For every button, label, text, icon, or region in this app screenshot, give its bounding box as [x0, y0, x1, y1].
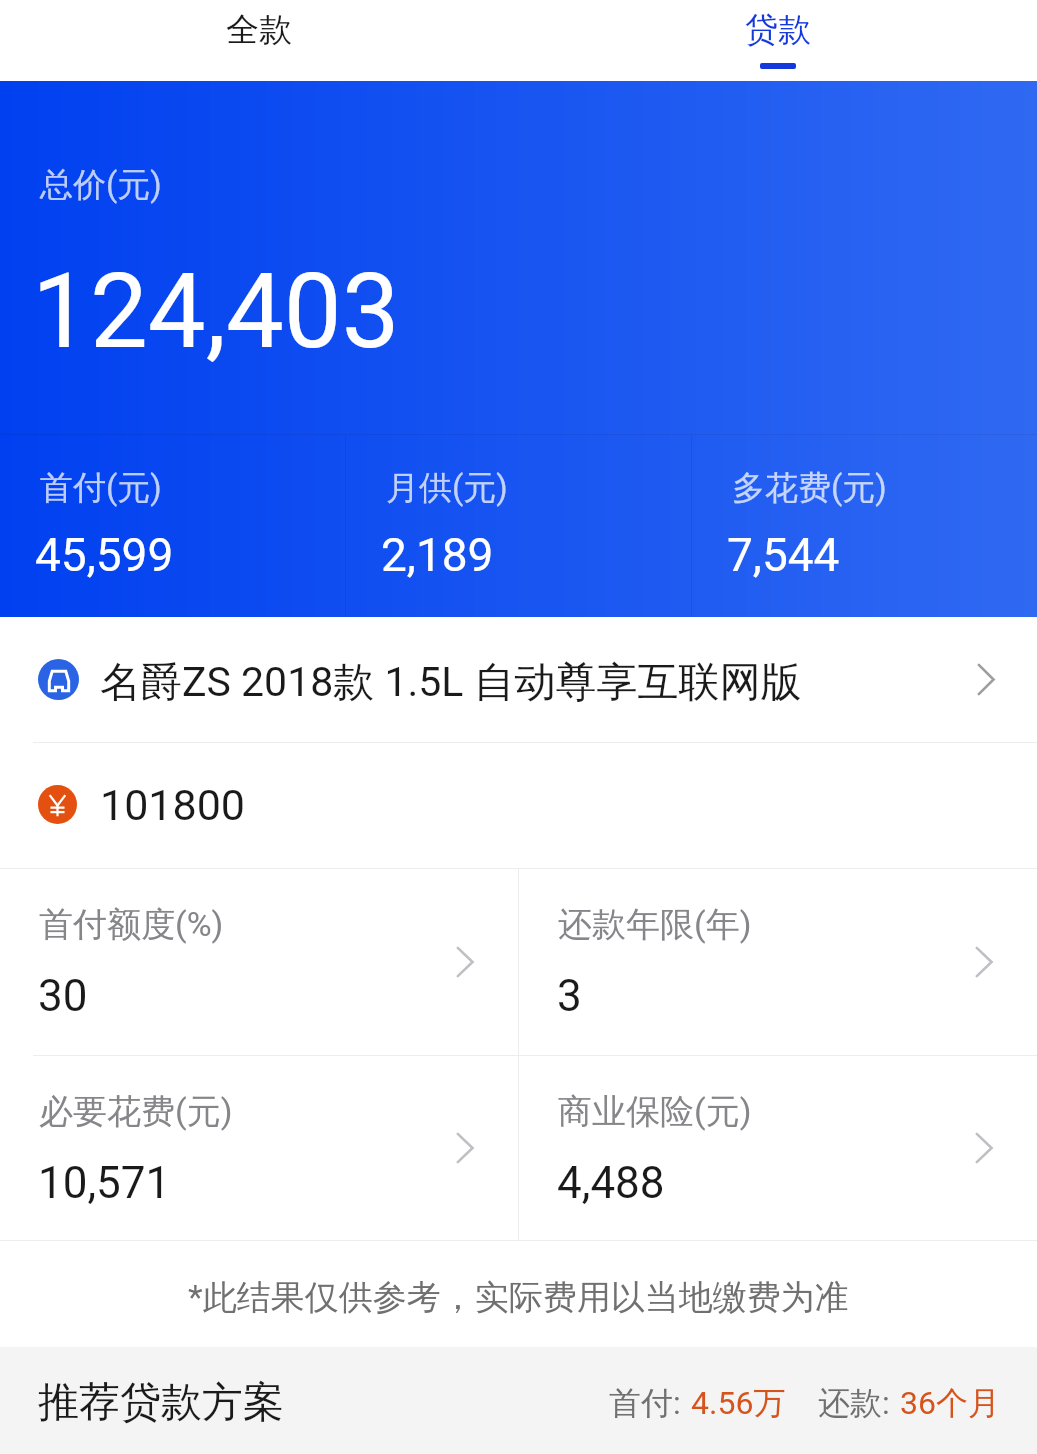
staticText: 3 — [557, 970, 582, 1022]
button[interactable]: 贷款 — [518, 0, 1037, 81]
other: More — [456, 947, 474, 977]
staticText: 101800 — [100, 780, 245, 830]
staticText: *此结果仅供参考，实际费用以当地缴费为准 — [188, 1276, 849, 1319]
staticText: 4.56万 — [691, 1383, 786, 1423]
other: Car model — [38, 659, 79, 700]
other: More — [456, 1133, 474, 1163]
staticText: 首付(元) — [40, 467, 162, 509]
other: More — [975, 1133, 993, 1163]
staticText: 首付额度(%) — [39, 903, 224, 946]
staticText: 30 — [38, 970, 88, 1022]
staticText: 10,571 — [38, 1157, 171, 1209]
staticText: 2,189 — [381, 528, 494, 582]
other: More — [975, 947, 993, 977]
button[interactable]: 月供(元) — [346, 435, 691, 617]
button[interactable]: 必要花费(元) — [0, 1056, 518, 1240]
button[interactable]: 多花费(元) — [692, 435, 1037, 617]
staticText: 45,599 — [35, 528, 174, 582]
staticText: 总价(元) — [40, 164, 162, 206]
staticText: 商业保险(元) — [558, 1090, 752, 1133]
button[interactable]: 首付额度(%) — [0, 869, 518, 1055]
staticText: 还款年限(年) — [558, 903, 752, 946]
button[interactable]: Car model — [0, 617, 1037, 742]
button[interactable]: 还款年限(年) — [519, 869, 1037, 1055]
staticText: 名爵ZS 2018款 1.5L 自动尊享互联网版 — [100, 657, 802, 709]
staticText: 推荐贷款方案 — [38, 1377, 284, 1429]
button[interactable]: 首付(元) — [0, 435, 345, 617]
staticText: 4,488 — [557, 1157, 665, 1209]
staticText: 月供(元) — [386, 467, 508, 509]
staticText: 还款: — [818, 1383, 890, 1423]
staticText: 多花费(元) — [732, 467, 887, 509]
staticText: 必要花费(元) — [39, 1090, 233, 1133]
staticText: 7,544 — [727, 528, 840, 582]
button[interactable]: Price — [0, 743, 1037, 868]
staticText: 全款 — [226, 9, 292, 51]
staticText: 贷款 — [745, 9, 811, 51]
other: More — [977, 664, 995, 695]
staticText: 36个月 — [900, 1383, 1000, 1423]
button[interactable]: 全款 — [0, 0, 518, 81]
button[interactable]: 商业保险(元) — [519, 1056, 1037, 1240]
staticText: 首付: — [609, 1383, 681, 1423]
staticText: 124,403 — [32, 251, 400, 372]
other: Price — [38, 785, 77, 824]
